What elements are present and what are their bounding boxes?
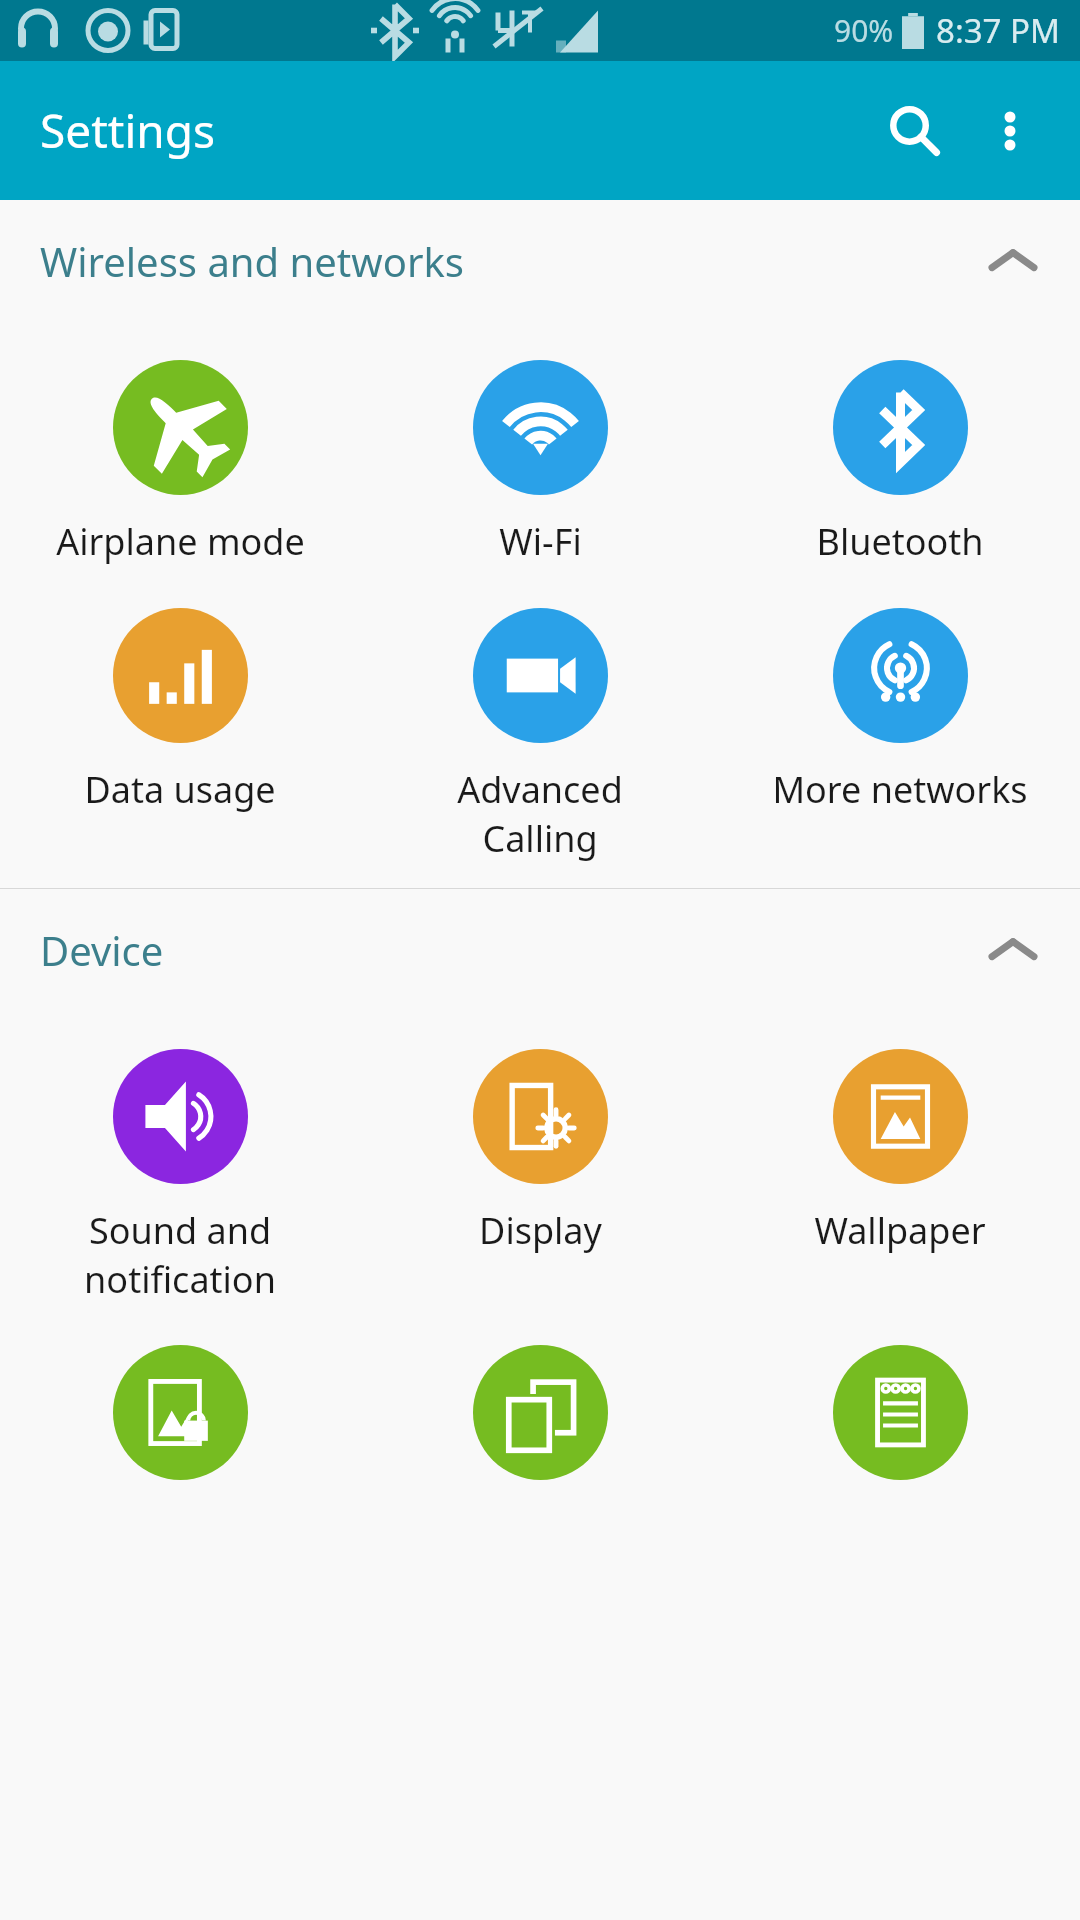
staticText: Airplane mode (56, 517, 305, 566)
button[interactable]: More networks (720, 608, 1080, 814)
staticText: Settings (40, 99, 216, 162)
button[interactable]: Wi-Fi (360, 360, 720, 566)
staticText: Bluetooth (816, 517, 984, 566)
button[interactable] (360, 1345, 720, 1480)
staticText: More networks (772, 765, 1028, 814)
button[interactable]: Advanced Calling (360, 608, 720, 862)
button[interactable]: Airplane mode (0, 360, 360, 566)
staticText: 90% (834, 10, 894, 51)
staticText: Advanced Calling (457, 765, 623, 862)
staticText: 8:37 PM (936, 8, 1060, 53)
button[interactable]: Data usage (0, 608, 360, 814)
staticText: Data usage (84, 765, 276, 814)
button[interactable]: Search (866, 83, 962, 179)
staticText: Sound and notification (84, 1206, 276, 1303)
button[interactable]: Wireless and networks (0, 200, 1080, 322)
button[interactable]: Wallpaper (720, 1049, 1080, 1255)
button[interactable] (0, 1345, 360, 1480)
button[interactable]: Bluetooth (720, 360, 1080, 566)
staticText: Device (40, 923, 164, 977)
button[interactable] (720, 1345, 1080, 1480)
staticText: Wallpaper (814, 1206, 986, 1255)
button[interactable]: Display (360, 1049, 720, 1255)
staticText: Wi-Fi (499, 517, 582, 566)
button[interactable]: Sound and notification (0, 1049, 360, 1303)
staticText: Wireless and networks (40, 234, 464, 288)
staticText: Display (479, 1206, 602, 1255)
button[interactable]: Device (0, 889, 1080, 1011)
button[interactable]: More options (962, 83, 1058, 179)
